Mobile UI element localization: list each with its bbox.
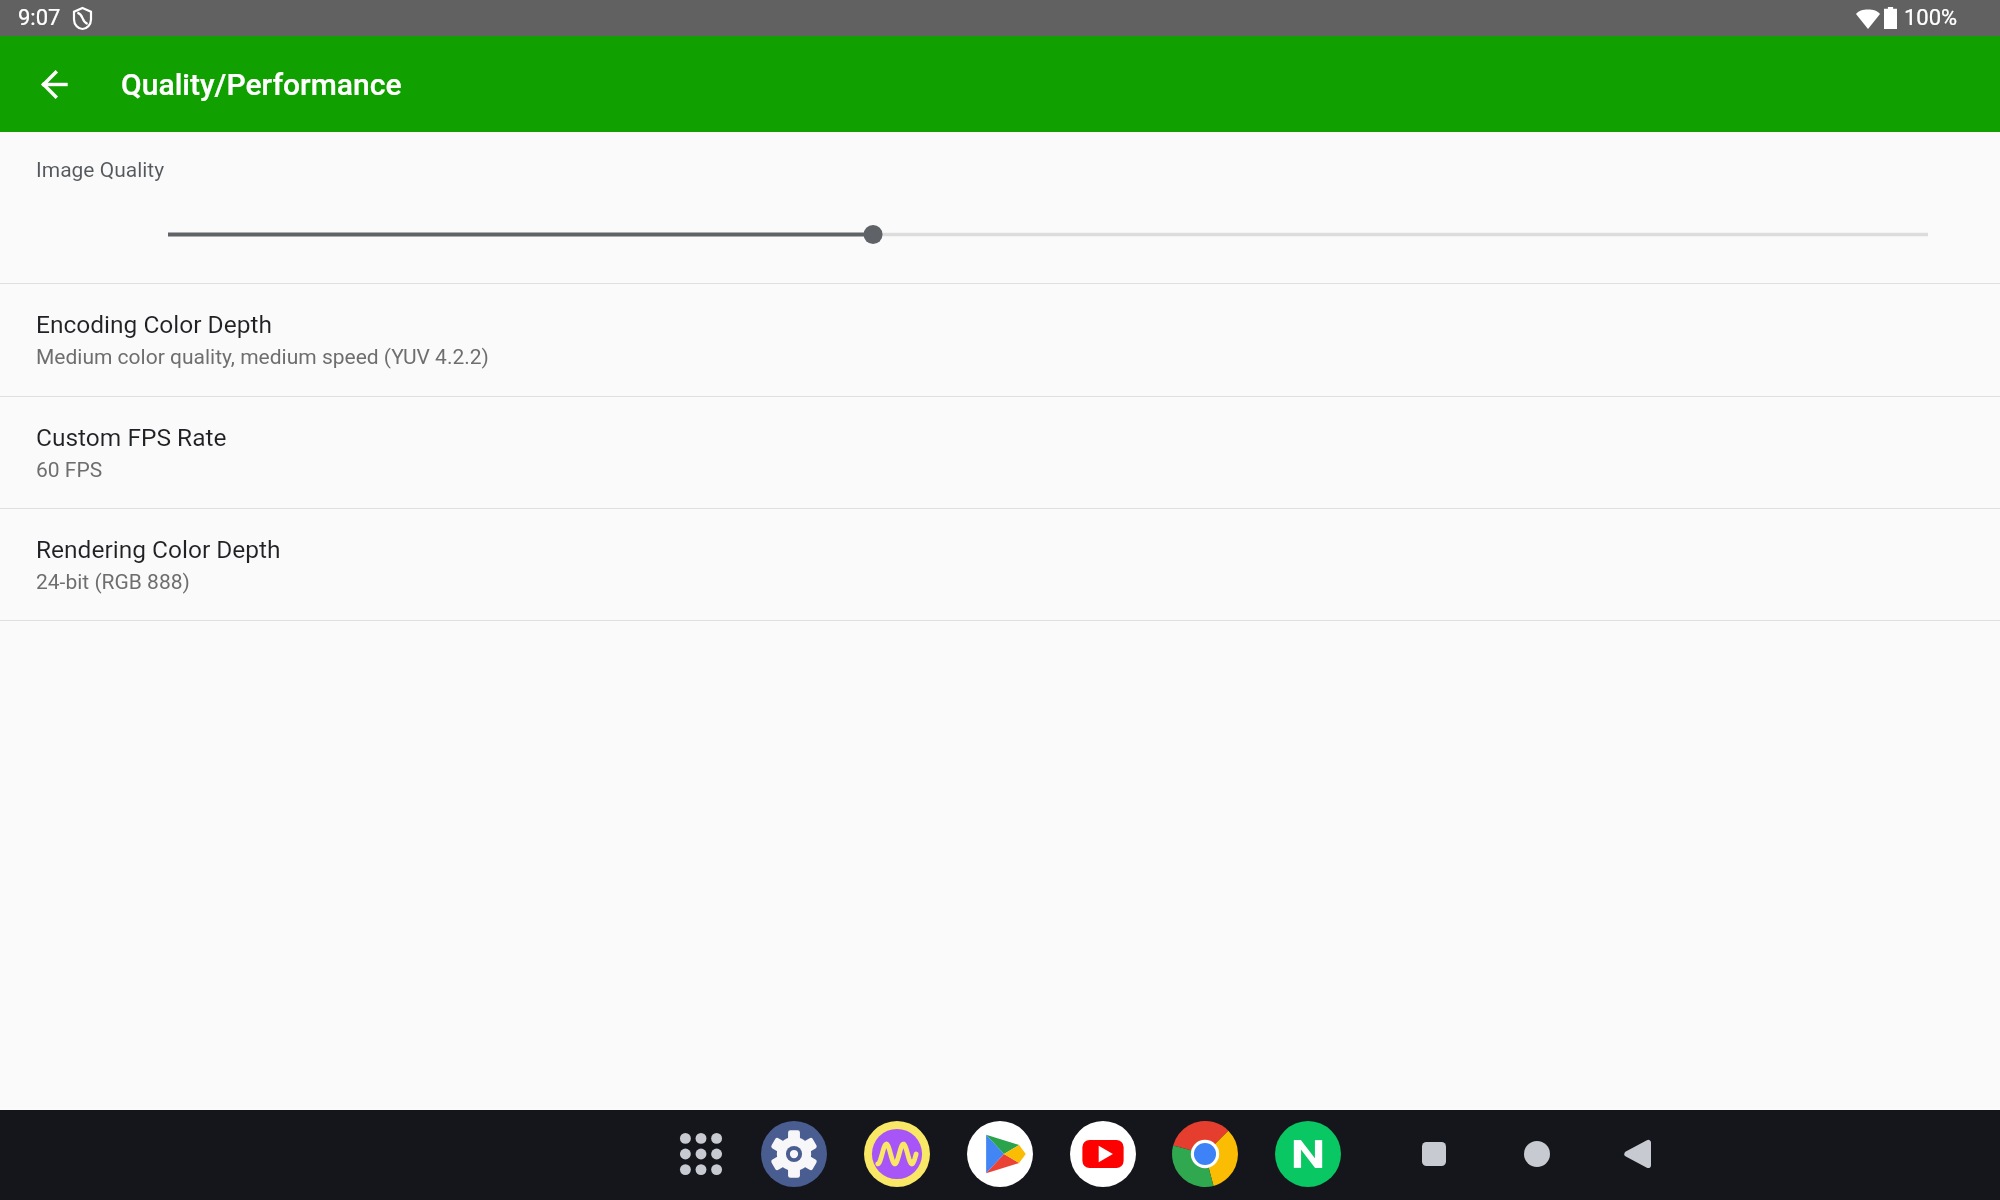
button[interactable]: Custom FPS Rate: [0, 397, 2000, 508]
staticText: Encoding Color Depth: [36, 310, 272, 339]
button[interactable]: Encoding Color Depth: [0, 284, 2000, 396]
staticText: Rendering Color Depth: [36, 535, 281, 564]
button[interactable]: Play Store: [964, 1118, 1036, 1190]
staticText: Quality/Performance: [121, 67, 402, 102]
staticText: 60 FPS: [36, 458, 103, 483]
button[interactable]: Music: [861, 1118, 933, 1190]
button[interactable]: Recents: [1398, 1118, 1470, 1190]
button[interactable]: Back: [0, 36, 108, 132]
button[interactable]: Home: [1501, 1118, 1573, 1190]
staticText: 9:07: [18, 5, 61, 31]
button[interactable]: Chrome: [1169, 1118, 1241, 1190]
button[interactable]: Image Quality: [0, 132, 2000, 283]
button[interactable]: YouTube: [1067, 1118, 1139, 1190]
button[interactable]: Rendering Color Depth: [0, 509, 2000, 620]
button[interactable]: Apps: [665, 1118, 737, 1190]
staticText: Image Quality: [36, 158, 165, 183]
staticText: 24-bit (RGB 888): [36, 570, 190, 595]
staticText: 100%: [1904, 5, 1958, 31]
button[interactable]: Back: [1602, 1118, 1674, 1190]
staticText: Medium color quality, medium speed (YUV …: [36, 345, 489, 370]
staticText: Custom FPS Rate: [36, 423, 227, 452]
button[interactable]: Nova: [1272, 1118, 1344, 1190]
button[interactable]: Settings: [758, 1118, 830, 1190]
